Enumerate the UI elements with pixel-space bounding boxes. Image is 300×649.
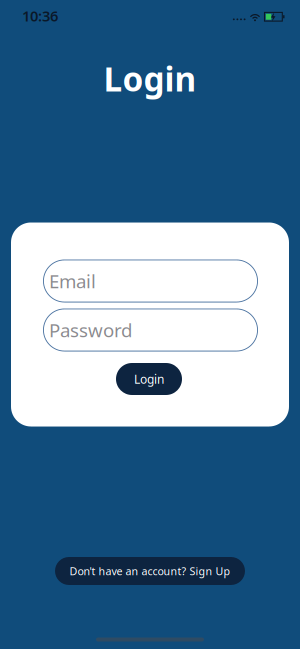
staticText: Login (103, 56, 196, 101)
button[interactable]: Don't have an account? Sign Up (55, 557, 245, 585)
staticText: Login (134, 371, 164, 387)
button[interactable]: Login (116, 363, 182, 395)
staticText: Don't have an account? Sign Up (69, 564, 230, 578)
staticText: 10:36 (22, 6, 58, 25)
staticText: Email (49, 269, 96, 293)
button[interactable]: Email (43, 259, 258, 302)
staticText: Password (49, 318, 132, 342)
button[interactable]: Password (43, 308, 258, 351)
